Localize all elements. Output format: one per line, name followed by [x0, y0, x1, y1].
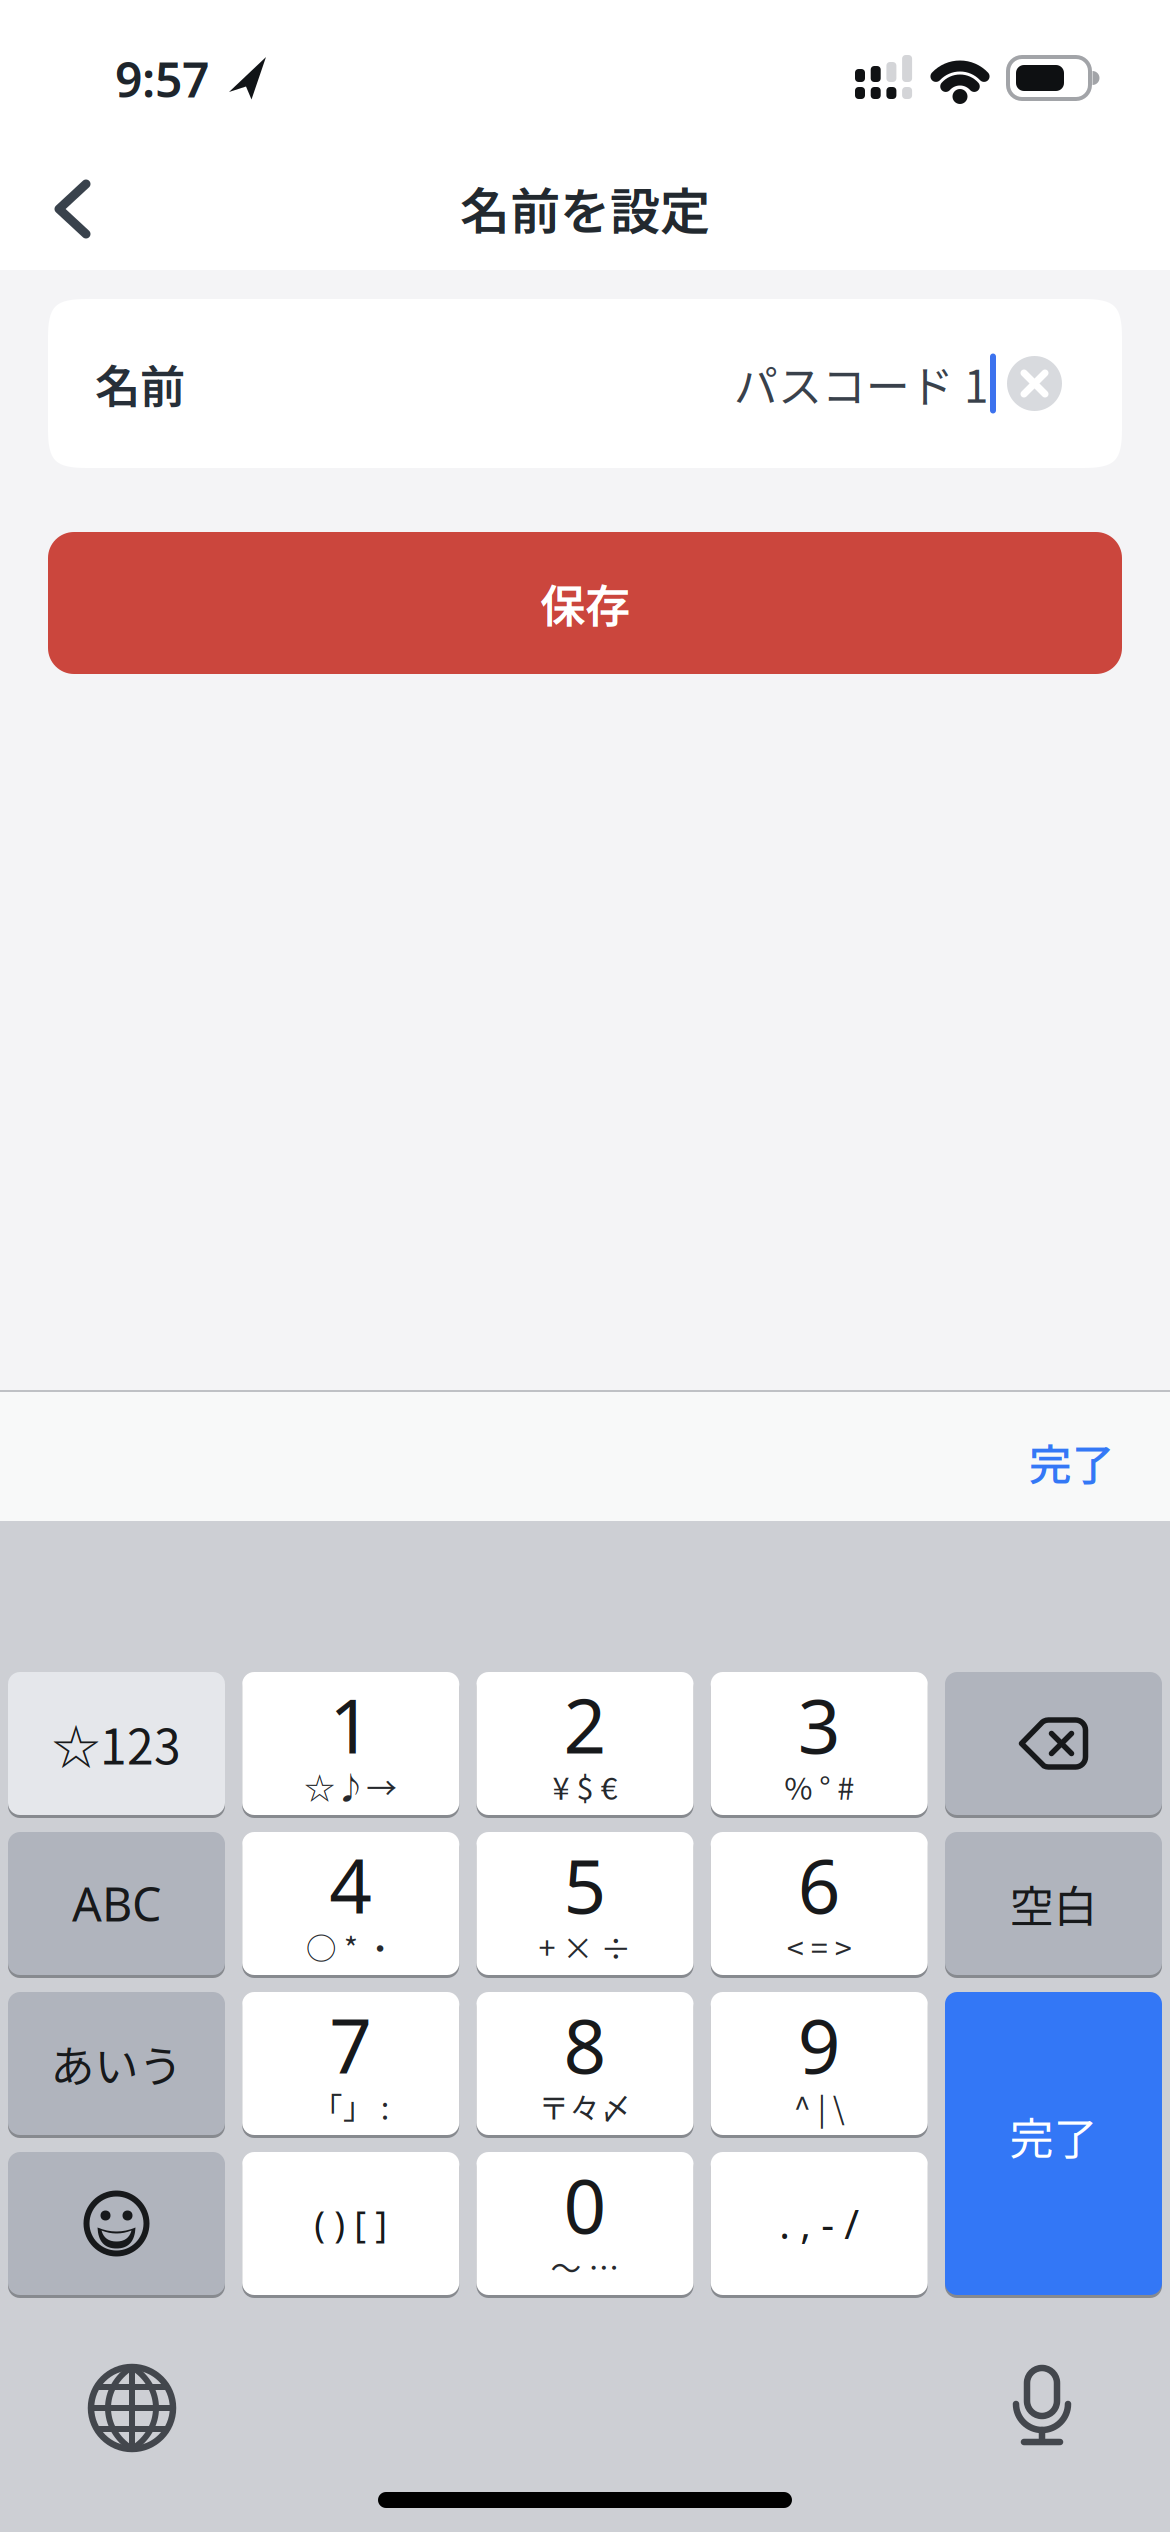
staticText: ^ | \	[794, 2084, 845, 2129]
button[interactable]: カッコ	[242, 2152, 459, 2295]
button[interactable]: 削除	[945, 1672, 1162, 1815]
staticText: ( ) [ ]	[314, 2200, 387, 2247]
button[interactable]: 保存	[48, 532, 1122, 674]
staticText: 6	[798, 1835, 841, 1934]
staticText: 空白	[1009, 1872, 1097, 1935]
button[interactable]: 完了	[1029, 1431, 1115, 1493]
staticText: 9:57	[115, 47, 209, 111]
button[interactable]: 5	[476, 1832, 693, 1975]
button[interactable]: 音声入力	[1007, 2366, 1077, 2450]
staticText: 〜 …	[550, 2244, 619, 2289]
staticText: 8	[563, 1995, 606, 2094]
staticText: 4	[329, 1835, 372, 1934]
staticText: ABC	[72, 1872, 161, 1934]
button[interactable]: 空白	[945, 1832, 1162, 1975]
staticText: 完了	[1009, 2104, 1097, 2167]
button[interactable]: 1	[242, 1672, 459, 1815]
button[interactable]: ABCモード	[8, 1832, 225, 1975]
staticText: < = >	[787, 1924, 852, 1969]
staticText: 〒々〆	[538, 2084, 631, 2129]
button[interactable]: 次のキーボード	[86, 2362, 178, 2454]
staticText: 保存	[540, 570, 630, 636]
staticText: ¥ $ €	[552, 1764, 617, 1809]
button[interactable]: 戻る	[51, 179, 95, 239]
staticText: ○ * ・	[306, 1924, 396, 1969]
staticText: 名前を設定	[460, 172, 710, 244]
staticText: 完了	[1029, 1431, 1115, 1493]
staticText: 「」 :	[312, 2084, 390, 2129]
staticText: 1	[329, 1675, 372, 1774]
button[interactable]: 7	[242, 1992, 459, 2135]
button[interactable]: 記号	[711, 2152, 928, 2295]
staticText: + × ÷	[538, 1924, 631, 1969]
staticText: 0	[563, 2155, 606, 2254]
staticText: 3	[798, 1675, 841, 1774]
button[interactable]: 4	[242, 1832, 459, 1975]
staticText: % ° #	[784, 1764, 854, 1809]
button[interactable]: かなモード	[8, 1992, 225, 2135]
button[interactable]: 6	[711, 1832, 928, 1975]
button[interactable]: 絵文字	[8, 2152, 225, 2295]
button[interactable]: 名前	[48, 299, 1122, 468]
staticText: . , - /	[779, 2197, 859, 2250]
staticText: 9	[798, 1995, 841, 2094]
button[interactable]: 完了	[945, 1992, 1162, 2295]
button[interactable]: 2	[476, 1672, 693, 1815]
staticText: 5	[563, 1835, 606, 1934]
button[interactable]: 0	[476, 2152, 693, 2295]
staticText: ☆♪→	[304, 1764, 397, 1809]
button[interactable]: 3	[711, 1672, 928, 1815]
staticText: 2	[563, 1675, 606, 1774]
staticText: パスコード 1	[734, 352, 988, 415]
staticText: ☆123	[52, 1709, 181, 1778]
staticText: 7	[329, 1995, 372, 2094]
button[interactable]: 8	[476, 1992, 693, 2135]
staticText: 名前	[95, 351, 185, 416]
staticText: あいう	[50, 2032, 182, 2095]
button[interactable]: クリア	[1007, 356, 1062, 411]
button[interactable]: 9	[711, 1992, 928, 2135]
button[interactable]: 123モード	[8, 1672, 225, 1815]
